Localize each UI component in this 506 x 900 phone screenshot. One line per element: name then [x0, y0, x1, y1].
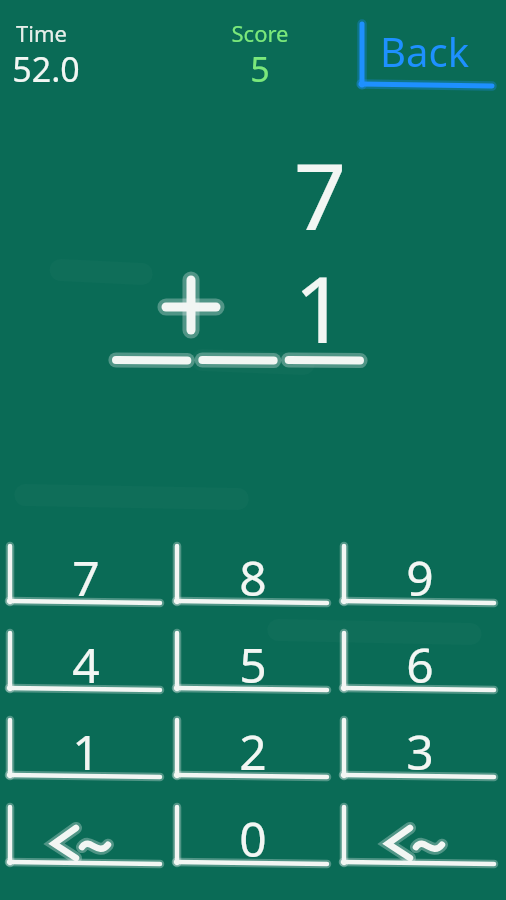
- button[interactable]: 8: [173, 543, 333, 609]
- staticText: 8: [231, 545, 275, 610]
- button[interactable]: Backspace: [340, 804, 500, 870]
- staticText: Score: [205, 18, 315, 48]
- staticText: 7: [285, 132, 355, 257]
- button[interactable]: Backspace: [6, 804, 166, 870]
- staticText: 1: [285, 245, 355, 370]
- staticText: 3: [398, 719, 442, 784]
- staticText: 1: [64, 719, 108, 784]
- staticText: 0: [231, 806, 275, 871]
- button[interactable]: 9: [340, 543, 500, 609]
- staticText: 5: [231, 632, 275, 697]
- staticText: Time: [16, 18, 67, 48]
- staticText: 2: [231, 719, 275, 784]
- button[interactable]: 4: [6, 630, 166, 696]
- staticText: 4: [64, 632, 108, 697]
- button[interactable]: 2: [173, 717, 333, 783]
- staticText: 5: [205, 46, 315, 92]
- staticText: 6: [398, 632, 442, 697]
- staticText: 52.0: [12, 46, 80, 92]
- staticText: 7: [64, 545, 108, 610]
- button[interactable]: 7: [6, 543, 166, 609]
- button[interactable]: 3: [340, 717, 500, 783]
- button[interactable]: 5: [173, 630, 333, 696]
- button[interactable]: 0: [173, 804, 333, 870]
- staticText: Back: [380, 24, 469, 78]
- button[interactable]: 6: [340, 630, 500, 696]
- button[interactable]: 1: [6, 717, 166, 783]
- staticText: 9: [398, 545, 442, 610]
- button[interactable]: Back: [358, 22, 498, 94]
